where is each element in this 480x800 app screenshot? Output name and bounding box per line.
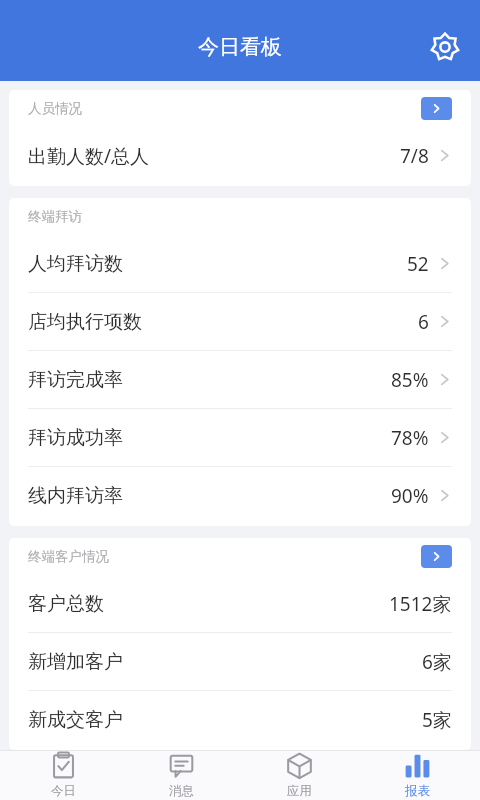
staticText: 人均拜访数 [28,252,123,276]
staticText: 85% [391,367,429,393]
staticText: 新增加客户 [28,650,123,674]
button[interactable]: 店均执行项数 [9,293,471,350]
staticText: 客户总数 [28,592,104,616]
staticText: 6家 [422,649,452,675]
button[interactable]: 拜访完成率 [9,351,471,408]
button[interactable]: 今日 [8,751,118,800]
button[interactable]: 人均拜访数 [9,235,471,292]
button[interactable]: View details [421,97,452,120]
button[interactable]: 应用 [244,751,354,800]
button[interactable]: 拜访成功率 [9,409,471,466]
button[interactable]: 报表 [362,751,472,800]
button[interactable]: View details [421,545,452,568]
staticText: 店均执行项数 [28,310,142,334]
button[interactable]: 线内拜访率 [9,467,471,524]
staticText: 7/8 [400,143,429,169]
staticText: 人员情况 [28,100,82,117]
staticText: 5家 [422,707,452,733]
staticText: 78% [391,425,429,451]
staticText: 6 [418,309,429,335]
staticText: 应用 [287,783,312,799]
button[interactable]: 新增加客户 [9,633,471,690]
staticText: 出勤人数/总人 [28,143,150,169]
button[interactable]: 客户总数 [9,575,471,632]
button[interactable]: 出勤人数/总人 [9,127,471,184]
staticText: 终端拜访 [28,208,82,225]
staticText: 消息 [169,783,194,799]
staticText: 今日 [51,783,76,799]
button[interactable]: 消息 [126,751,236,800]
staticText: 新成交客户 [28,708,123,732]
staticText: 拜访完成率 [28,368,123,392]
staticText: 52 [407,251,429,277]
staticText: 今日看板 [198,34,282,60]
staticText: 拜访成功率 [28,426,123,450]
staticText: 1512家 [389,591,452,617]
button[interactable]: 新成交客户 [9,691,471,748]
button[interactable]: Settings [422,24,468,70]
staticText: 终端客户情况 [28,548,109,565]
staticText: 报表 [405,783,430,799]
staticText: 线内拜访率 [28,484,123,508]
staticText: 90% [391,483,429,509]
